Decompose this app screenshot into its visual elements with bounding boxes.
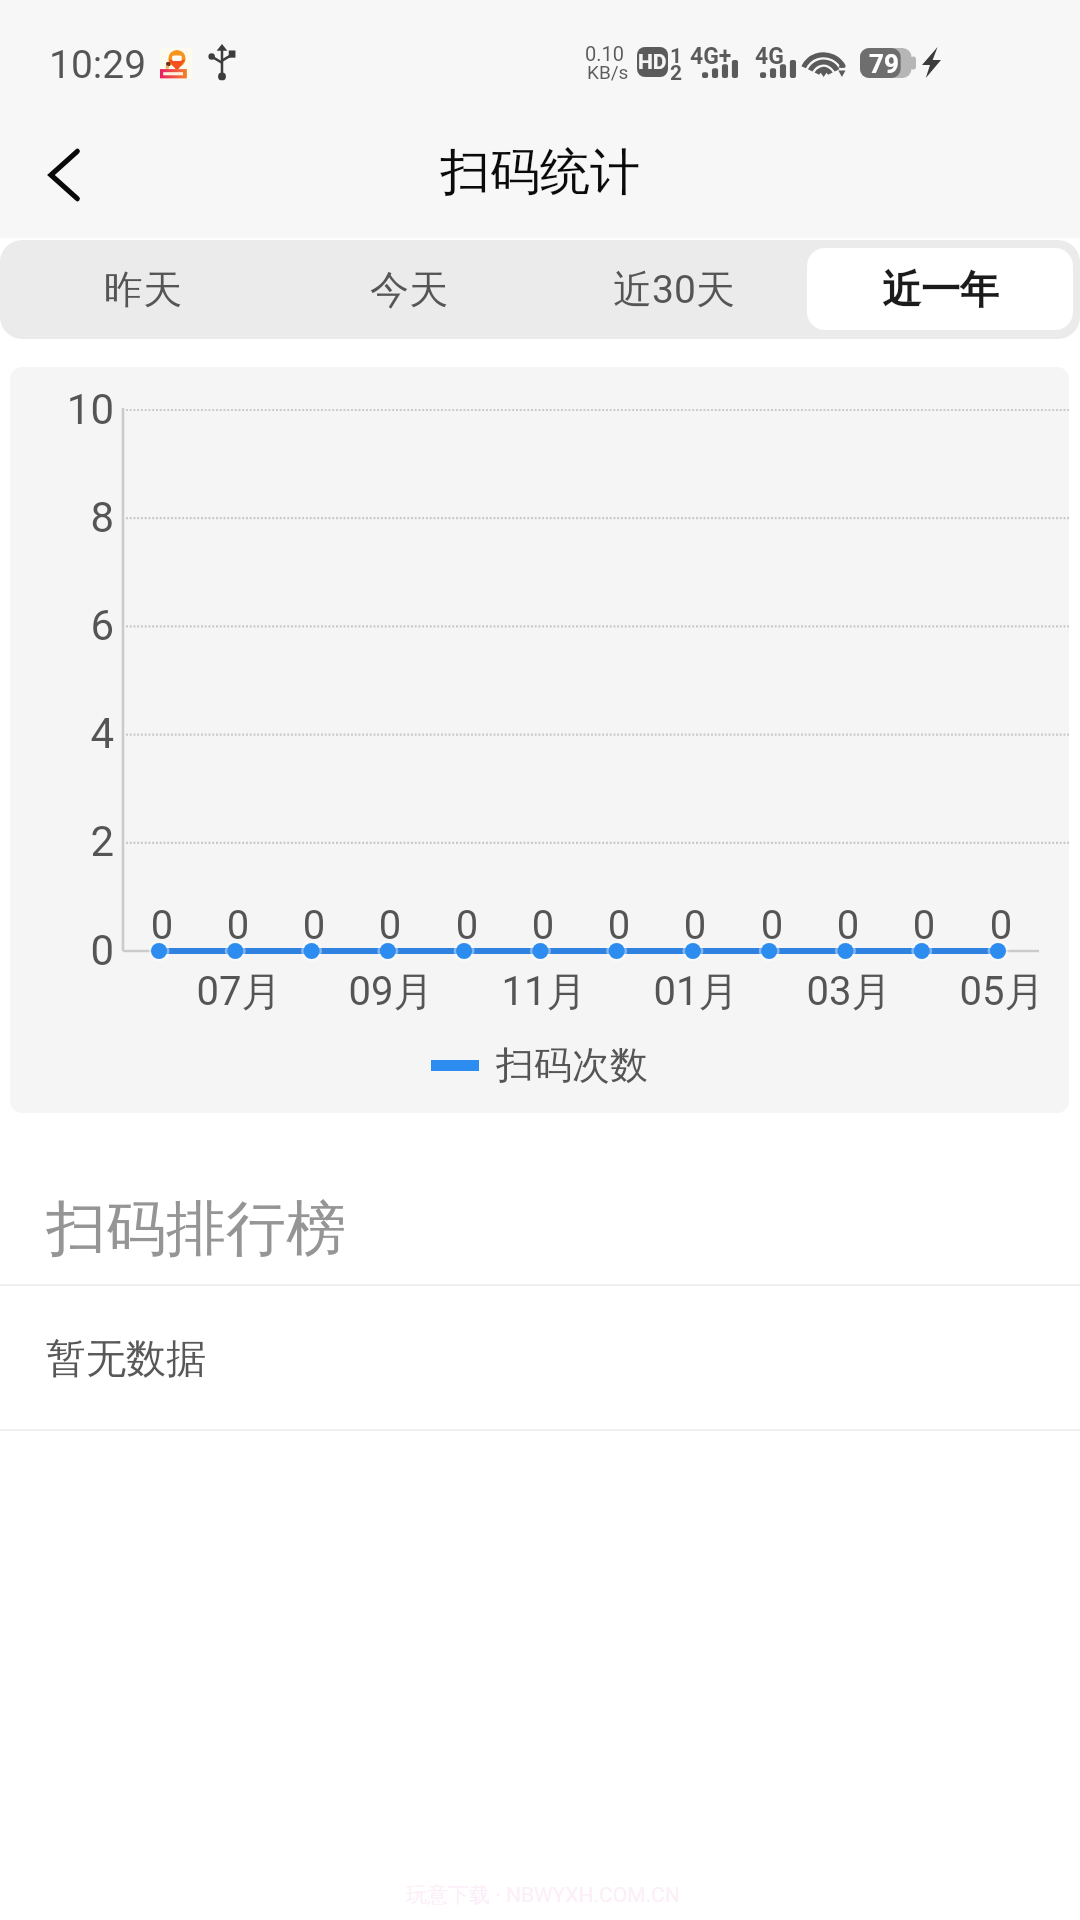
staticText: 10	[10, 385, 114, 434]
staticText: 11月	[474, 966, 614, 1016]
staticText: 4	[10, 709, 114, 758]
staticText: 0	[513, 902, 573, 949]
button[interactable]: 近30天	[541, 248, 807, 330]
staticText: KB/s	[587, 61, 629, 83]
staticText: 4G+	[690, 43, 732, 70]
button[interactable]: 昨天	[10, 248, 276, 330]
staticText: 昨天	[104, 265, 182, 314]
staticText: 0	[360, 902, 420, 949]
staticText: 2	[670, 61, 683, 86]
staticText: 0	[971, 902, 1031, 949]
staticText: 0	[132, 902, 192, 949]
staticText: 2	[10, 817, 114, 866]
staticText: 1	[670, 44, 683, 69]
staticText: 0	[742, 902, 802, 949]
staticText: 6	[10, 601, 114, 650]
staticText: 03月	[779, 966, 919, 1016]
staticText: 0	[894, 902, 954, 949]
staticText: 01月	[626, 966, 766, 1016]
staticText: 扫码次数	[496, 1041, 648, 1089]
staticText: 暂无数据	[46, 1333, 206, 1383]
staticText: 近一年	[882, 265, 999, 314]
staticText: 玩意下载 · NBWYXH.COM.CN	[406, 1882, 680, 1908]
button[interactable]: 近一年	[807, 248, 1073, 330]
staticText: 0	[208, 902, 268, 949]
staticText: 07月	[169, 966, 309, 1016]
staticText: HD	[638, 50, 667, 75]
button[interactable]: 扫码排行榜	[0, 1173, 1080, 1285]
staticText: 近30天	[613, 265, 735, 314]
button[interactable]: 今天	[276, 248, 542, 330]
staticText: 09月	[321, 966, 461, 1016]
staticText: 10:29	[49, 42, 147, 88]
staticText: 今天	[370, 265, 448, 314]
staticText: 0	[10, 926, 114, 975]
staticText: 79	[869, 49, 899, 79]
staticText: 扫码排行榜	[46, 1191, 346, 1267]
staticText: 0	[665, 902, 725, 949]
staticText: 0	[284, 902, 344, 949]
staticText: 0	[589, 902, 649, 949]
button[interactable]: Back	[12, 122, 117, 227]
staticText: 8	[10, 493, 114, 542]
staticText: 4G	[755, 43, 784, 70]
staticText: 0.10	[585, 42, 624, 65]
staticText: 0	[437, 902, 497, 949]
staticText: 0	[818, 902, 878, 949]
staticText: 扫码统计	[440, 141, 640, 204]
staticText: 05月	[932, 966, 1069, 1016]
button[interactable]: 暂无数据	[0, 1286, 1080, 1430]
